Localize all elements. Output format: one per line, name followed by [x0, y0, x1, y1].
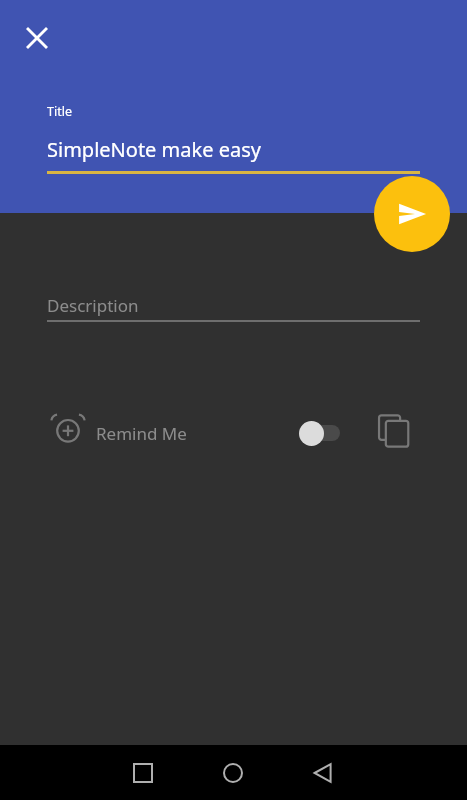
button[interactable]: SimpleNote make easy [47, 136, 420, 174]
button[interactable]: Recents [98, 745, 188, 800]
button[interactable]: Reminder toggle [292, 413, 352, 453]
button[interactable]: Add reminder [44, 405, 92, 453]
staticText: Description [47, 294, 139, 317]
button[interactable]: Send [374, 176, 450, 252]
staticText: Title [47, 103, 72, 120]
button[interactable]: Home [188, 745, 278, 800]
button[interactable]: Description [47, 294, 420, 322]
button[interactable]: Close [18, 19, 55, 56]
button[interactable]: Copy [368, 405, 420, 457]
staticText: SimpleNote make easy [47, 136, 261, 163]
staticText: Remind Me [96, 422, 187, 445]
button[interactable]: Back [278, 745, 368, 800]
